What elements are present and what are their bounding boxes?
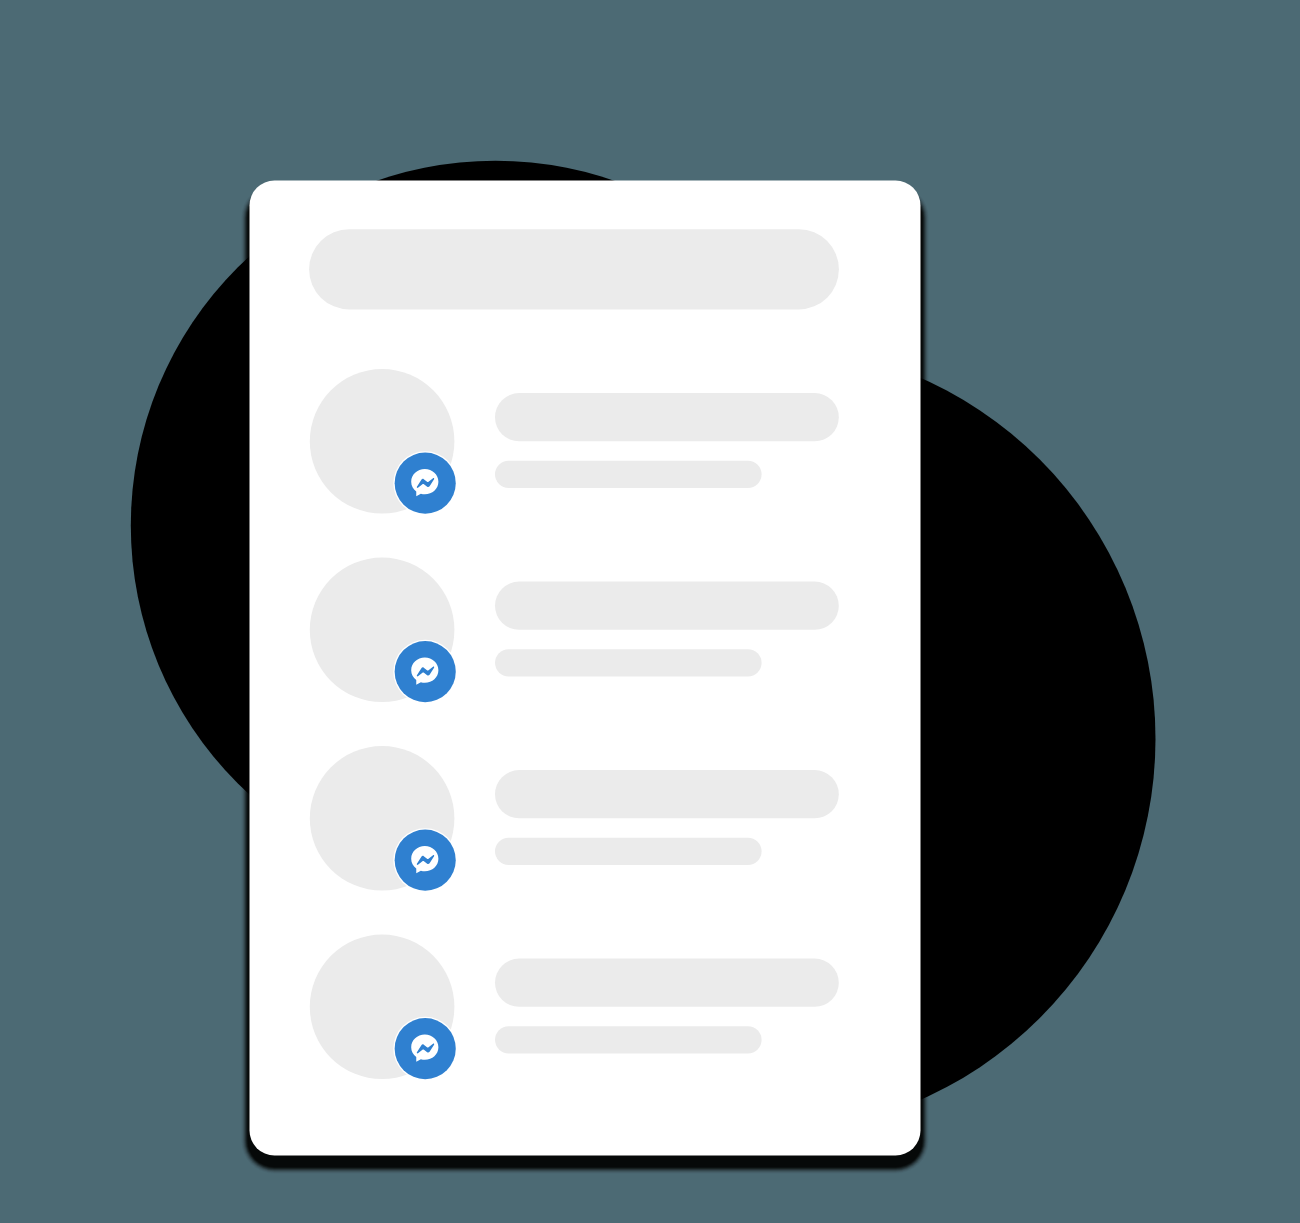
button[interactable]: Open conversation [250, 558, 921, 703]
button[interactable]: Search Messenger [309, 229, 839, 309]
button[interactable]: Open conversation [250, 746, 921, 891]
button[interactable]: Open conversation [250, 935, 921, 1080]
button[interactable]: Open conversation [250, 369, 921, 514]
